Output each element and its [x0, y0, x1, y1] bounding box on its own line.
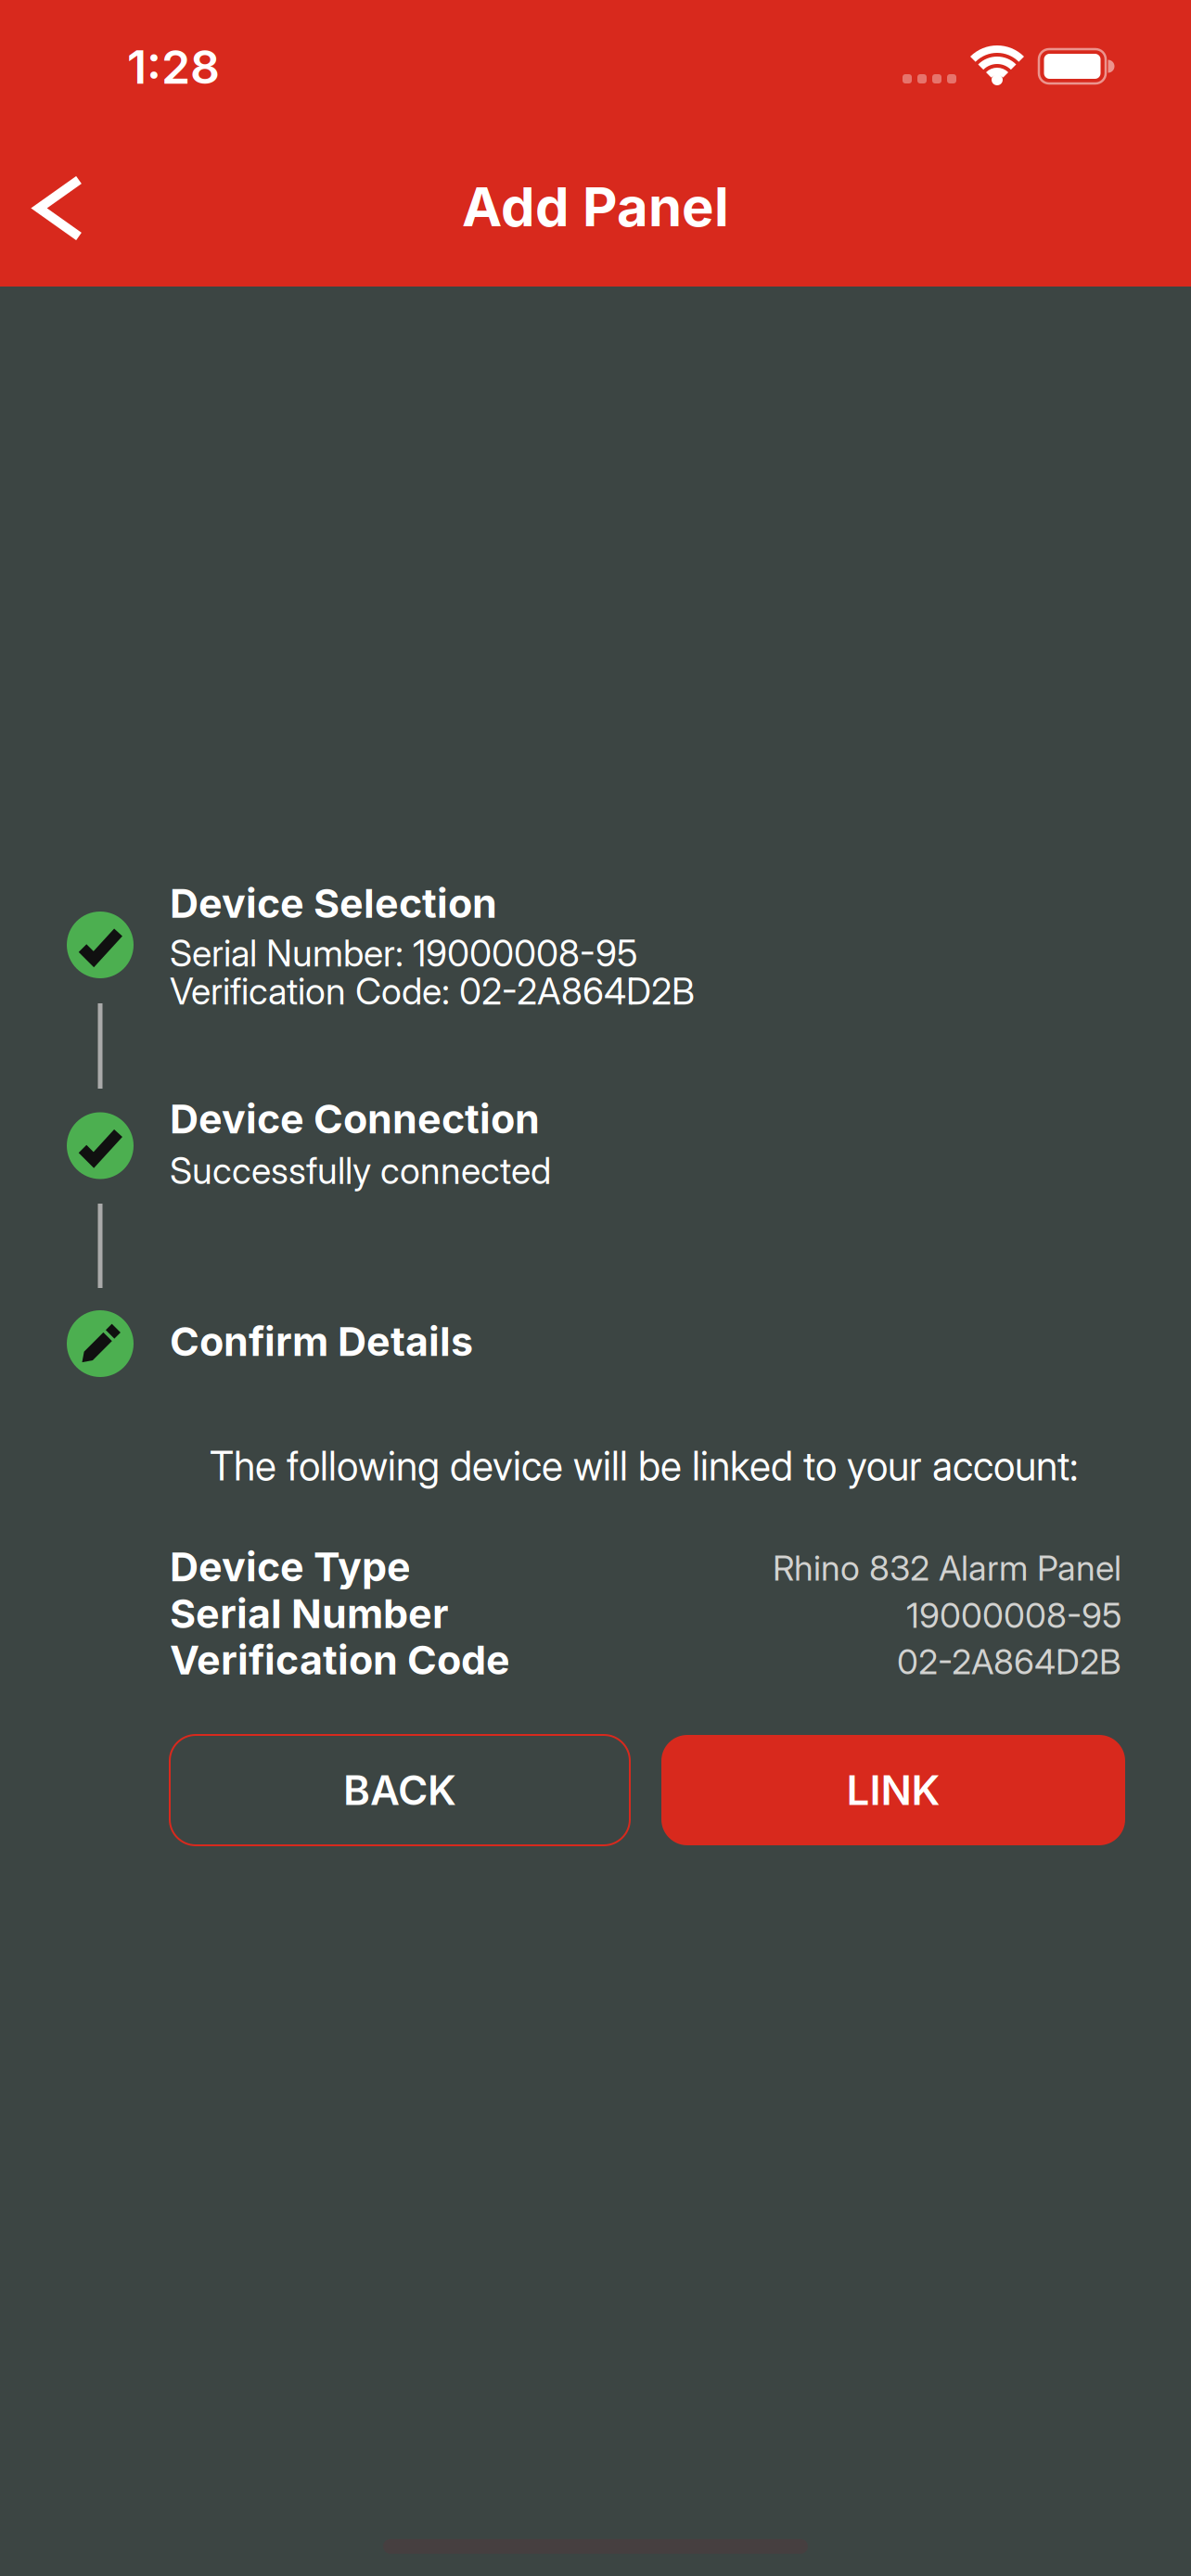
staticText: Device Type: [170, 1543, 411, 1591]
staticText: Device Connection: [170, 1095, 540, 1143]
staticText: The following device will be linked to y…: [210, 1442, 1078, 1490]
staticText: 19000008-95: [906, 1595, 1121, 1636]
staticText: Device Selection: [170, 879, 497, 927]
staticText: Verification Code: [170, 1636, 510, 1684]
button[interactable]: Back: [18, 169, 101, 248]
staticText: 1:28: [127, 39, 220, 95]
button[interactable]: BACK: [170, 1735, 630, 1845]
staticText: Confirm Details: [170, 1317, 473, 1365]
staticText: LINK: [846, 1765, 940, 1815]
staticText: BACK: [343, 1765, 456, 1815]
staticText: Rhino 832 Alarm Panel: [773, 1547, 1121, 1589]
staticText: Serial Number: 19000008-95: [170, 931, 638, 975]
staticText: Successfully connected: [170, 1149, 551, 1193]
staticText: Serial Number: [170, 1589, 449, 1638]
button[interactable]: LINK: [661, 1735, 1125, 1845]
staticText: Add Panel: [462, 174, 729, 239]
staticText: Verification Code: 02-2A864D2B: [170, 969, 695, 1013]
staticText: 02-2A864D2B: [897, 1641, 1121, 1682]
